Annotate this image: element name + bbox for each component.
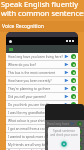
button[interactable]: Do you think you are tired?	[6, 101, 78, 108]
button[interactable]: Record	[77, 121, 82, 126]
button[interactable]: My friends are all very kind	[6, 141, 78, 148]
button[interactable]: I wanted to speak more confidently	[6, 133, 78, 140]
staticText: I was like my grandfather	[8, 111, 64, 115]
staticText: This bus is the most convenient	[47, 138, 70, 142]
button[interactable]: Record	[71, 126, 76, 131]
staticText: How long have you been living here?	[47, 122, 70, 126]
staticText: with common sentences	[1, 8, 84, 18]
staticText: How have you been recently?	[47, 145, 70, 149]
button[interactable]: Record	[71, 62, 76, 67]
button[interactable]: Did you tell your parents?	[6, 93, 78, 100]
staticText: and check your score	[50, 133, 78, 137]
button[interactable]: This bus is the most convenient	[45, 136, 84, 143]
button[interactable]: Record	[71, 118, 76, 123]
button[interactable]: I was like my grandfather	[6, 109, 78, 116]
staticText: This bus is the most convenient	[8, 71, 64, 75]
button[interactable]: I got an email from a co-worker	[6, 125, 78, 132]
staticText: Did you tell your parents?	[8, 95, 64, 99]
staticText: Speak sentence	[53, 129, 75, 133]
staticText: They're planning to go there	[8, 87, 64, 91]
button[interactable]: Record	[71, 94, 76, 99]
button[interactable]: Microphone	[59, 139, 69, 149]
staticText: Where do you live?	[8, 63, 64, 67]
button[interactable]: Record	[71, 86, 76, 91]
staticText: How have you been recently?	[8, 79, 64, 83]
staticText: What colour is your shirt?	[8, 119, 64, 123]
button[interactable]: Record	[77, 145, 82, 150]
button[interactable]: How long have you been living here?	[6, 53, 78, 60]
staticText: My friends are all very kind	[8, 143, 64, 147]
button[interactable]: Record	[71, 54, 76, 59]
staticText: Speak English fluently	[1, 0, 79, 9]
button[interactable]: Record	[77, 129, 82, 134]
button[interactable]: How long have you been living here?	[45, 120, 84, 127]
button[interactable]: What colour is your shirt?	[6, 117, 78, 124]
staticText: Voice Recognition	[2, 23, 44, 30]
button[interactable]: Record	[71, 102, 76, 107]
staticText: How long have you been living here?	[8, 55, 64, 59]
button[interactable]: This bus is the most convenient	[6, 69, 78, 76]
button[interactable]: How have you been recently?	[45, 144, 84, 150]
button[interactable]: Record	[71, 70, 76, 75]
button[interactable]: Do you have a driving licence?	[6, 149, 78, 150]
staticText: I wanted to speak more confidently	[8, 135, 64, 139]
button[interactable]: How have you been recently?	[6, 77, 78, 84]
staticText: I got an email from a co-worker	[8, 127, 64, 131]
button[interactable]: Where do you live?	[6, 61, 78, 68]
button[interactable]: Record	[71, 78, 76, 83]
staticText: Where do you live?	[47, 130, 70, 134]
staticText: Do you have a driving licence?	[8, 149, 64, 150]
staticText: Do you think you are tired?	[8, 103, 64, 107]
button[interactable]: Where do you live?	[45, 128, 84, 135]
button[interactable]: Record	[71, 134, 76, 139]
button[interactable]: They're planning to go there	[6, 85, 78, 92]
button[interactable]: Record	[77, 137, 82, 142]
